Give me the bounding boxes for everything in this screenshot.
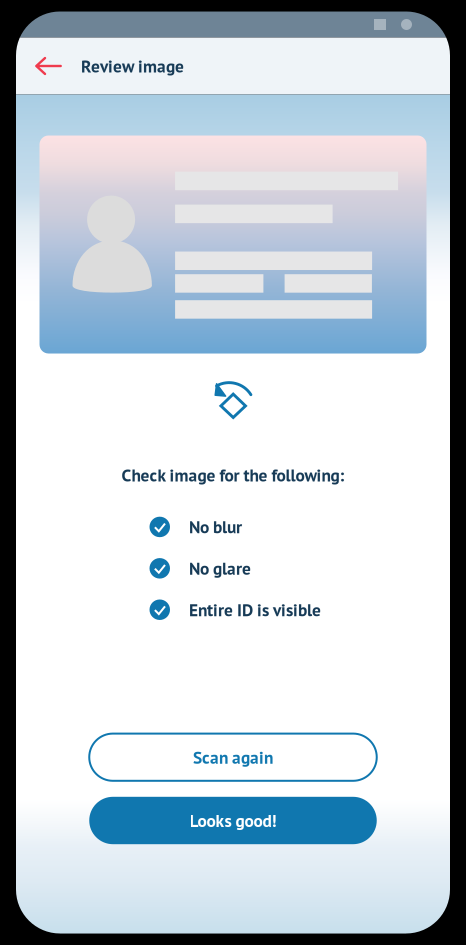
staticText: No blur bbox=[189, 516, 242, 538]
staticText: Entire ID is visible bbox=[189, 598, 321, 621]
staticText: Review image bbox=[81, 55, 184, 77]
button[interactable]: Back bbox=[16, 38, 81, 94]
staticText: No glare bbox=[189, 557, 251, 579]
button[interactable]: Looks good! bbox=[89, 797, 377, 844]
staticText: Looks good! bbox=[189, 809, 276, 832]
button[interactable]: Scan again bbox=[89, 734, 377, 781]
staticText: Scan again bbox=[193, 746, 273, 768]
staticText: Check image for the following: bbox=[121, 464, 344, 486]
